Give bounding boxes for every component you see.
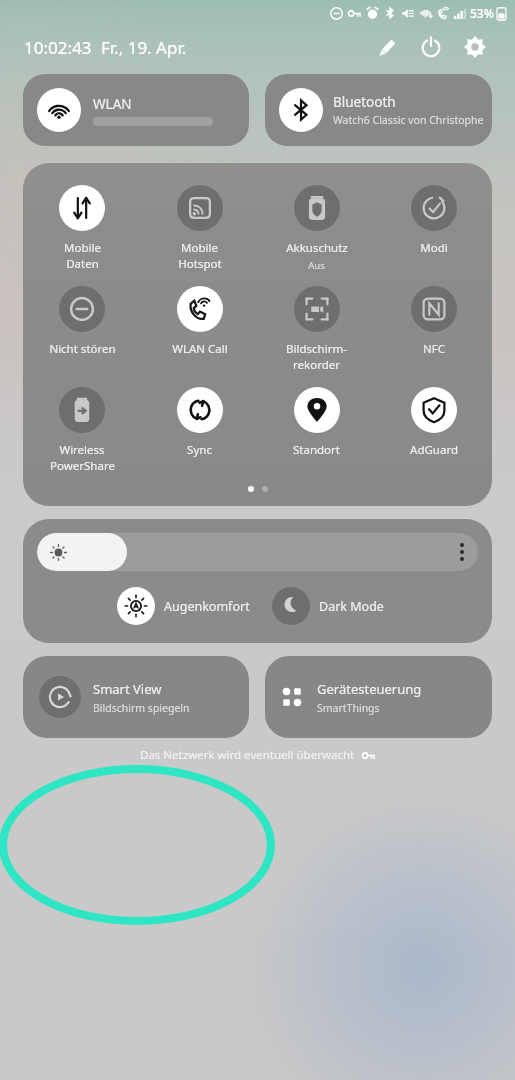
staticText: Smart View (93, 680, 162, 698)
staticText: Das Netzwerk wird eventuell überwacht (140, 747, 355, 763)
staticText: Sync (187, 442, 212, 458)
button[interactable]: Mobile (23, 185, 141, 272)
button[interactable]: Mehr Optionen (37, 533, 478, 571)
button[interactable]: Augenkomfort (117, 587, 250, 625)
button[interactable]: WLAN (23, 74, 249, 146)
button[interactable]: Bearbeiten (365, 26, 409, 68)
staticText: Hotspot (178, 256, 222, 272)
button[interactable]: Mobile (141, 185, 258, 272)
button[interactable]: Wireless (23, 387, 141, 474)
button[interactable]: Mehr Optionen (460, 543, 464, 561)
button[interactable]: Ein/Aus (409, 26, 453, 68)
staticText: WLAN (93, 95, 132, 113)
staticText: Augenkomfort (164, 598, 250, 615)
staticText: Aus (308, 259, 325, 272)
staticText: SmartThings (317, 701, 380, 715)
button[interactable]: Standort (258, 387, 375, 458)
staticText: Wireless (59, 442, 105, 458)
button[interactable]: Modi (375, 185, 492, 256)
staticText: Daten (66, 256, 99, 272)
button[interactable]: Bildschirm- (258, 286, 375, 373)
staticText: rekorder (293, 357, 340, 373)
staticText: Dark Mode (319, 598, 384, 615)
staticText: Akkuschutz (286, 240, 348, 256)
staticText: 10:02:43 (24, 36, 92, 59)
staticText: Bildschirm spiegeln (93, 701, 190, 715)
button[interactable]: Dark Mode (272, 587, 384, 625)
button[interactable]: WLAN Call (141, 286, 258, 357)
staticText: Gerätesteuerung (317, 680, 422, 698)
button[interactable]: Sync (141, 387, 258, 458)
staticText: NFC (423, 341, 445, 357)
button[interactable]: NFC (375, 286, 492, 357)
staticText: 53% (470, 5, 494, 21)
staticText: Nicht stören (49, 341, 116, 357)
button[interactable]: Gerätesteuerung (265, 656, 492, 738)
staticText: Fr., 19. Apr. (101, 36, 187, 59)
button[interactable]: Bluetooth (265, 74, 492, 146)
button[interactable]: Einstellungen (453, 26, 497, 68)
button[interactable]: Akkuschutz (258, 185, 375, 272)
button[interactable]: Nicht stören (23, 286, 141, 357)
staticText: Mobile (181, 240, 218, 256)
button[interactable]: AdGuard (375, 387, 492, 458)
staticText: Mobile (64, 240, 101, 256)
staticText: Watch6 Classic von Christophe (333, 113, 484, 127)
button[interactable]: Smart View (23, 656, 249, 738)
staticText: Standort (293, 442, 340, 458)
staticText: Bluetooth (333, 93, 396, 111)
staticText: WLAN Call (172, 341, 228, 357)
staticText: Bildschirm- (286, 341, 347, 357)
staticText: PowerShare (50, 458, 115, 474)
staticText: Modi (420, 240, 448, 256)
staticText: AdGuard (410, 442, 458, 458)
